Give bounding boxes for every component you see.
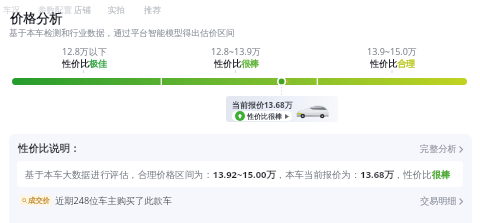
staticText: 当前报价13.68万 bbox=[232, 99, 293, 110]
staticText: 性价比很棒 bbox=[214, 58, 259, 69]
staticText: 成交价 bbox=[28, 196, 50, 205]
button[interactable]: 店铺 bbox=[74, 5, 91, 16]
button[interactable]: 性价比很棒 bbox=[235, 111, 289, 121]
staticText: 价格分析 bbox=[10, 10, 63, 27]
staticText: 性价比很棒 bbox=[247, 112, 282, 121]
staticText: 交易明细 bbox=[420, 195, 457, 207]
staticText: 12.8~13.9万 bbox=[211, 45, 261, 57]
button[interactable]: 完整分析 bbox=[420, 143, 463, 155]
staticText: 性价比合理 bbox=[370, 58, 415, 69]
button[interactable]: 车况 bbox=[3, 5, 20, 16]
button[interactable]: 实拍 bbox=[108, 5, 125, 16]
staticText: 近期248位车主购买了此款车 bbox=[55, 194, 172, 207]
staticText: 性价比极佳 bbox=[62, 58, 107, 69]
button[interactable]: 交易明细 bbox=[420, 195, 463, 207]
button[interactable]: 参数配置 bbox=[38, 5, 72, 16]
staticText: 性价比说明： bbox=[18, 142, 80, 155]
staticText: 12.8万以下 bbox=[62, 45, 107, 57]
staticText: 完整分析 bbox=[420, 143, 457, 155]
button[interactable]: 推荐 bbox=[144, 5, 161, 16]
staticText: 基于本车大数据进行评估，合理价格区间为：13.92~15.00万，本车当前报价为… bbox=[25, 168, 451, 181]
staticText: 基于本车检测和行业数据，通过平台智能模型得出估价区间 bbox=[9, 28, 235, 39]
staticText: 13.9~15.0万 bbox=[367, 45, 417, 57]
